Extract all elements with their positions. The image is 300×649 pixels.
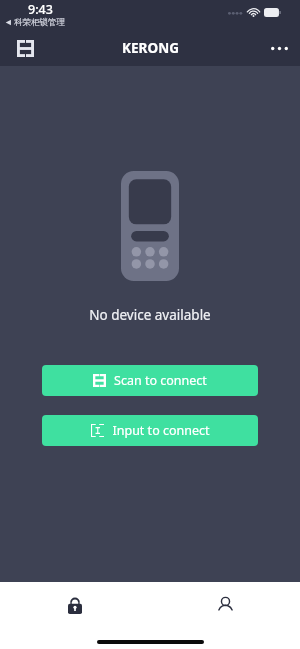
- button[interactable]: Input to connect: [42, 415, 258, 446]
- staticText: Input to connect: [112, 422, 210, 439]
- staticText: KERONG: [122, 39, 179, 57]
- button[interactable]: More options: [264, 33, 294, 63]
- staticText: No device available: [89, 306, 211, 324]
- staticText: 科荣柜锁管理: [14, 17, 65, 28]
- button[interactable]: Scan to connect: [42, 365, 258, 396]
- staticText: 9:43: [28, 1, 53, 18]
- button[interactable]: Profile: [150, 582, 300, 628]
- button[interactable]: Locks: [0, 582, 150, 628]
- staticText: Scan to connect: [114, 372, 207, 389]
- button[interactable]: Scan: [11, 34, 39, 62]
